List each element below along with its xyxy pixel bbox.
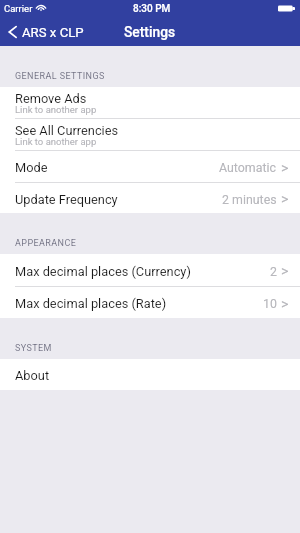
button[interactable]: Max decimal places (Rate) bbox=[0, 287, 300, 318]
staticText: Max decimal places (Rate) bbox=[15, 296, 167, 311]
staticText: > bbox=[281, 263, 289, 279]
staticText: Settings bbox=[124, 24, 176, 40]
staticText: 2 bbox=[270, 264, 277, 279]
button[interactable]: About bbox=[0, 359, 300, 390]
staticText: GENERAL SETTINGS bbox=[15, 71, 105, 82]
staticText: Automatic bbox=[219, 160, 277, 175]
staticText: Remove Ads bbox=[15, 91, 87, 106]
staticText: > bbox=[281, 191, 289, 207]
staticText: 2 minutes bbox=[222, 192, 277, 207]
staticText: > bbox=[281, 160, 289, 176]
staticText: See All Currencies bbox=[15, 123, 119, 138]
staticText: Max decimal places (Currency) bbox=[15, 264, 191, 279]
staticText: SYSTEM bbox=[15, 343, 52, 354]
staticText: 10 bbox=[263, 296, 277, 311]
staticText: Link to another app bbox=[15, 136, 97, 147]
staticText: Update Frequency bbox=[15, 192, 118, 207]
button[interactable]: Mode bbox=[0, 151, 300, 182]
button[interactable]: See All Currencies bbox=[0, 119, 300, 150]
staticText: APPEARANCE bbox=[15, 238, 77, 249]
button[interactable]: Back to ARS x CLP bbox=[0, 20, 90, 43]
staticText: About bbox=[15, 368, 50, 383]
button[interactable]: Update Frequency bbox=[0, 183, 300, 213]
button[interactable]: Remove Ads bbox=[0, 87, 300, 118]
button[interactable]: Max decimal places (Currency) bbox=[0, 254, 300, 286]
staticText: ARS x CLP bbox=[22, 25, 84, 40]
staticText: Link to another app bbox=[15, 104, 97, 115]
staticText: 8:30 PM bbox=[133, 3, 171, 15]
staticText: > bbox=[281, 296, 289, 312]
staticText: Mode bbox=[15, 160, 48, 175]
staticText: Carrier bbox=[4, 3, 33, 14]
